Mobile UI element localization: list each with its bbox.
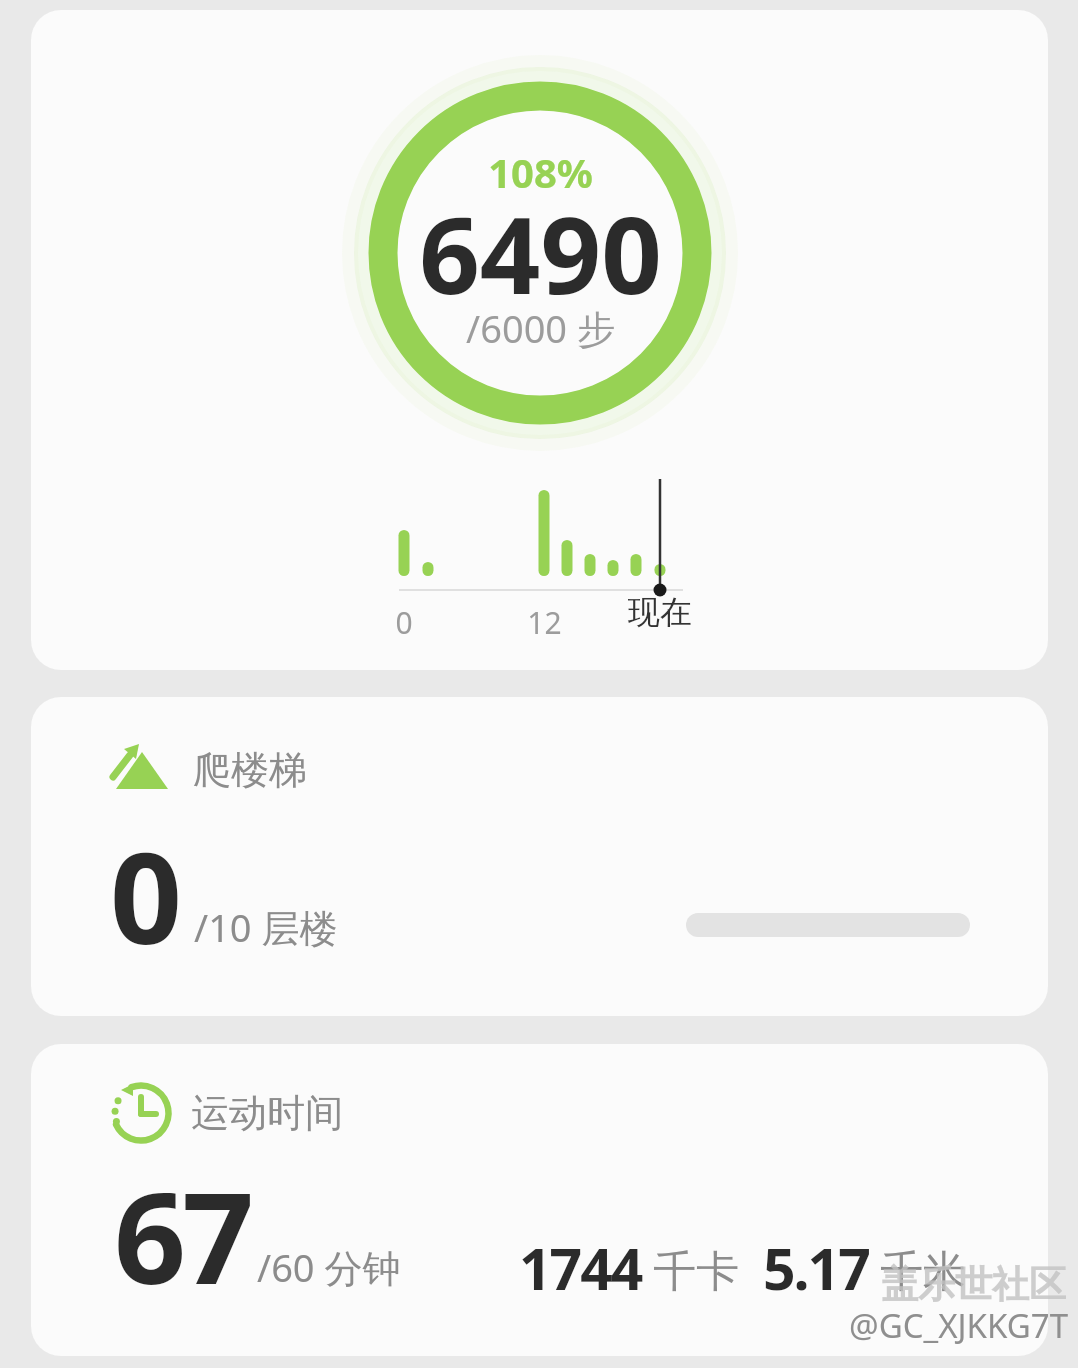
staticText: 千米 — [880, 1245, 966, 1299]
button[interactable] — [31, 697, 1048, 1016]
staticText: 爬楼梯 — [193, 746, 307, 794]
staticText: 运动时间 — [191, 1089, 343, 1137]
staticText: /10 层楼 — [194, 901, 338, 953]
staticText: 0 — [395, 602, 413, 643]
button[interactable] — [31, 1044, 1048, 1356]
staticText: 千卡 — [653, 1245, 739, 1299]
button[interactable] — [31, 10, 1048, 670]
staticText: @GC_XJKKG7T — [849, 1303, 1068, 1348]
staticText: 108% — [488, 145, 593, 199]
staticText: 6490 — [419, 181, 662, 325]
staticText: 盖乐世社区 — [881, 1261, 1066, 1308]
staticText: 5.17 — [763, 1229, 869, 1307]
staticText: 0 — [110, 809, 183, 969]
staticText: 67 — [114, 1149, 251, 1309]
staticText: /6000 步 — [466, 302, 615, 354]
staticText: 1744 — [519, 1229, 642, 1307]
staticText: 12 — [527, 602, 562, 643]
staticText: /60 分钟 — [257, 1241, 401, 1293]
staticText: 现在 — [628, 592, 692, 632]
